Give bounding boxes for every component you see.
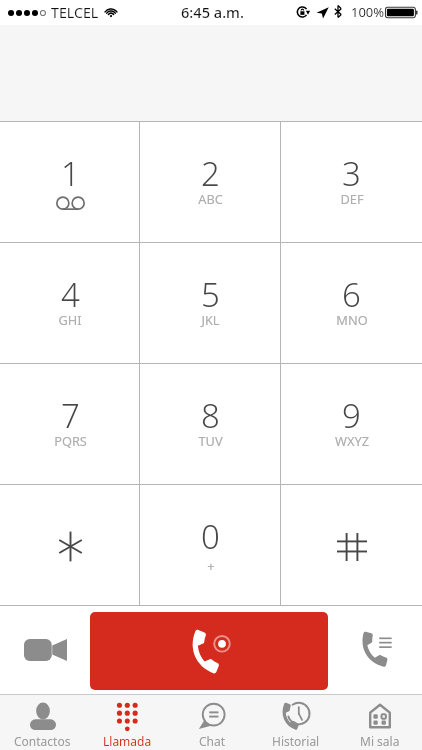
button[interactable]: Contactos [0, 695, 85, 750]
button[interactable] [281, 485, 422, 605]
staticText: 6 [342, 272, 361, 317]
staticText: + [207, 557, 215, 574]
staticText: JKL [201, 311, 220, 328]
staticText: 0 [201, 514, 220, 559]
button[interactable]: 7 [0, 364, 140, 484]
button[interactable]: 1 [0, 122, 140, 242]
button[interactable]: Historial [254, 695, 338, 750]
staticText: GHI [58, 311, 82, 328]
staticText: 2 [201, 151, 220, 196]
button[interactable]: 3 [281, 122, 422, 242]
staticText: 100% [351, 3, 385, 21]
staticText: 9 [342, 393, 361, 438]
staticText: 6:45 a.m. [181, 2, 244, 22]
button[interactable]: 9 [281, 364, 422, 484]
staticText: 5 [201, 272, 220, 317]
staticText: Llamada [103, 733, 152, 749]
button[interactable]: 4 [0, 243, 140, 363]
staticText: Chat [199, 733, 226, 749]
staticText: 8 [201, 393, 220, 438]
button[interactable]: Mi sala [338, 695, 422, 750]
staticText: 7 [61, 393, 80, 438]
button[interactable]: 0 [140, 485, 281, 605]
staticText: WXYZ [335, 432, 369, 449]
staticText: 4 [61, 272, 80, 317]
staticText: DEF [340, 190, 364, 207]
staticText: Mi sala [360, 733, 400, 749]
button[interactable] [0, 485, 140, 605]
button[interactable]: Chat [170, 695, 254, 750]
staticText: Contactos [14, 733, 71, 749]
staticText: ABC [198, 190, 223, 207]
button[interactable]: Recent calls [328, 606, 422, 694]
button[interactable]: Video call [0, 606, 90, 694]
staticText: 1 [61, 151, 80, 196]
button[interactable]: 2 [140, 122, 281, 242]
staticText: PQRS [54, 432, 87, 449]
button[interactable]: 8 [140, 364, 281, 484]
button[interactable]: 6 [281, 243, 422, 363]
staticText: MNO [336, 311, 368, 328]
staticText: TUV [198, 432, 223, 449]
button[interactable]: 5 [140, 243, 281, 363]
staticText: 3 [342, 151, 361, 196]
staticText: Historial [272, 733, 320, 749]
button[interactable]: Call [90, 612, 328, 690]
button[interactable]: Llamada [85, 695, 170, 750]
staticText: TELCEL [51, 3, 99, 22]
